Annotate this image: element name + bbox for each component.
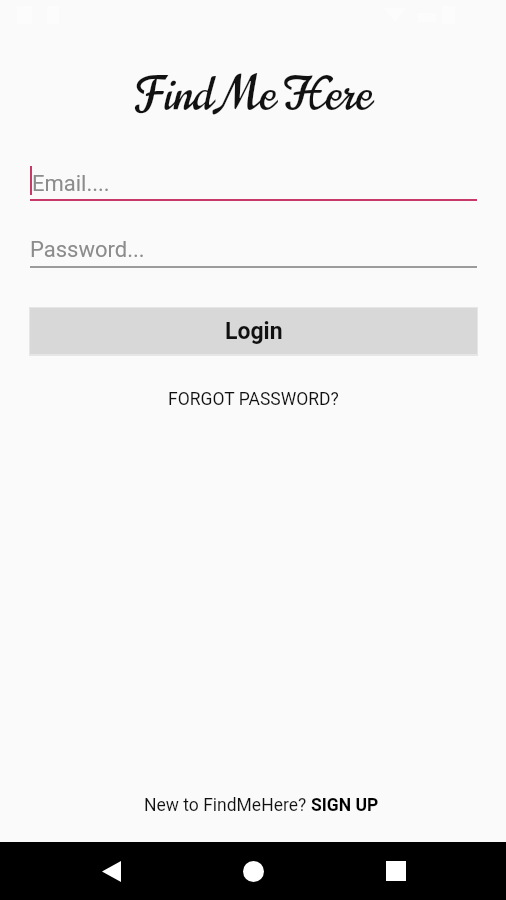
button[interactable]: Recents — [372, 847, 420, 895]
staticText: Email.... — [32, 171, 110, 197]
button[interactable]: Back — [87, 847, 135, 895]
staticText: SIGN UP — [311, 795, 379, 816]
button[interactable]: SIGN UP — [311, 795, 379, 816]
staticText: Password... — [30, 237, 145, 263]
button[interactable]: Home — [229, 847, 277, 895]
staticText: Find Me Here — [135, 63, 372, 126]
staticText: New to FindMeHere? — [144, 795, 311, 816]
staticText: FORGOT PASSWORD? — [168, 389, 339, 410]
button[interactable]: Login — [30, 308, 477, 354]
staticText: Login — [225, 318, 283, 345]
button[interactable]: FORGOT PASSWORD? — [168, 389, 339, 410]
